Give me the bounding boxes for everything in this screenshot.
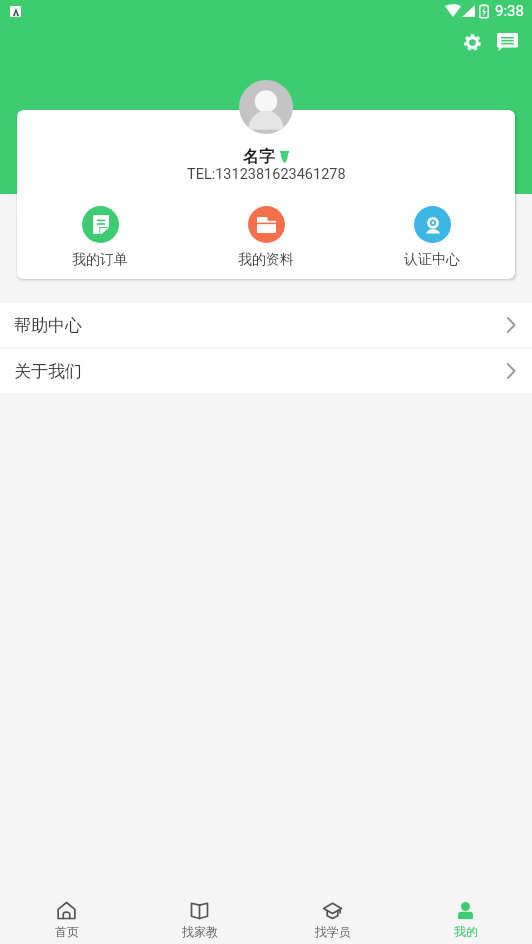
staticText: 我的	[454, 924, 478, 939]
staticText: 找家教	[182, 924, 218, 939]
staticText: 名字	[243, 147, 275, 167]
button[interactable]: 找家教	[133, 892, 266, 939]
staticText: 我的订单	[72, 251, 128, 269]
staticText: 首页	[55, 924, 79, 939]
staticText: TEL:1312381623461278	[187, 166, 346, 183]
staticText: 我的资料	[238, 251, 294, 269]
button[interactable]: Messages	[490, 25, 524, 59]
staticText: 找学员	[315, 924, 351, 939]
button[interactable]: 我的	[399, 892, 532, 939]
staticText: 帮助中心	[14, 315, 82, 336]
button[interactable]: Avatar	[239, 80, 293, 134]
staticText: 关于我们	[14, 361, 82, 382]
staticText: 9:38	[495, 2, 524, 20]
button[interactable]: 我的资料	[183, 206, 349, 269]
button[interactable]: 认证中心	[349, 206, 515, 269]
staticText: 认证中心	[404, 251, 460, 269]
button[interactable]: 关于我们	[0, 349, 532, 393]
button[interactable]: 找学员	[266, 892, 399, 939]
button[interactable]: 帮助中心	[0, 303, 532, 347]
button[interactable]: Settings	[455, 25, 489, 59]
button[interactable]: 首页	[0, 892, 133, 939]
button[interactable]: 我的订单	[17, 206, 183, 269]
